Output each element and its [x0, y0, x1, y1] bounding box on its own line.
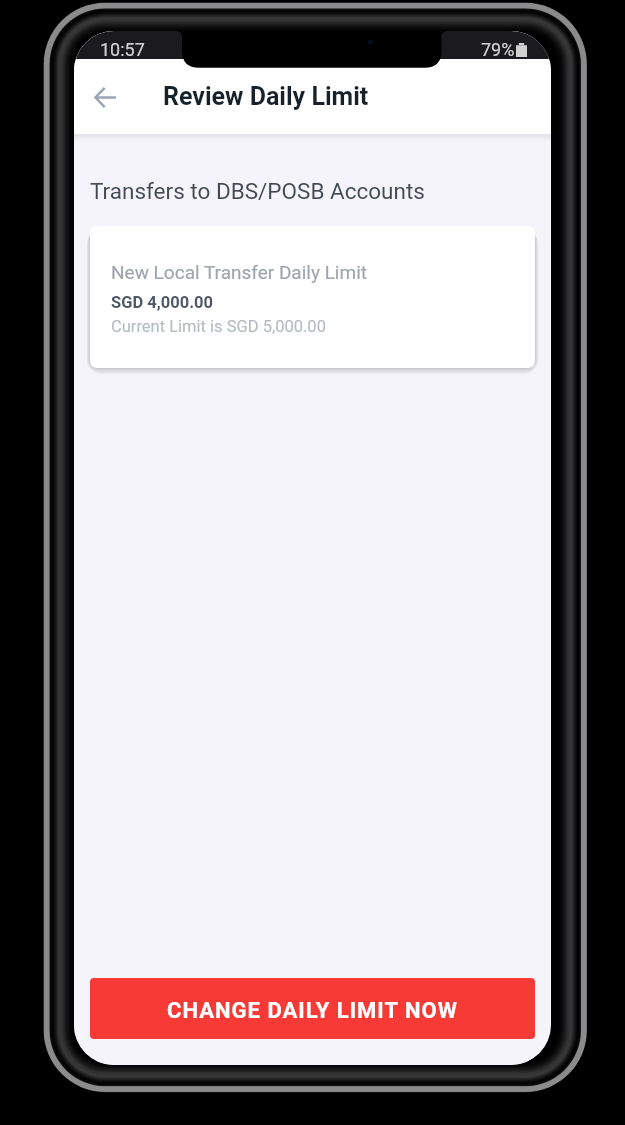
button[interactable]: Back	[83, 75, 127, 119]
staticText: Review Daily Limit	[163, 82, 369, 111]
staticText: Current Limit is SGD 5,000.00	[111, 317, 326, 336]
button[interactable]: CHANGE DAILY LIMIT NOW	[90, 978, 535, 1039]
staticText: SGD 4,000.00	[111, 293, 213, 312]
staticText: CHANGE DAILY LIMIT NOW	[167, 998, 458, 1024]
staticText: 79%	[481, 39, 515, 60]
staticText: New Local Transfer Daily Limit	[111, 261, 367, 283]
staticText: Transfers to DBS/POSB Accounts	[90, 178, 425, 204]
button[interactable]: New Local Transfer Daily Limit	[90, 226, 535, 368]
staticText: 10:57	[100, 39, 145, 60]
